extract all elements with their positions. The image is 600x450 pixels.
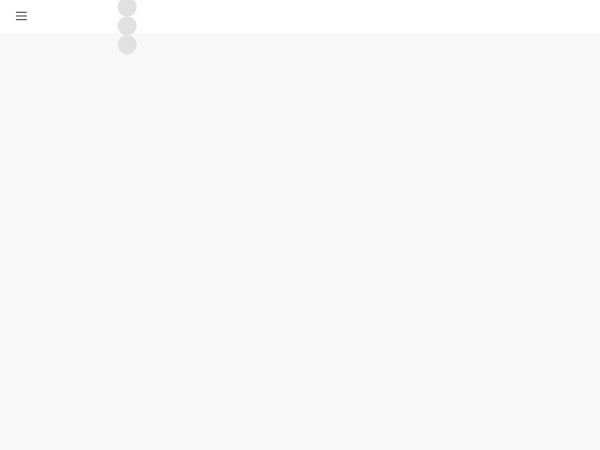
button[interactable]: Open navigation menu (5, 2, 37, 31)
